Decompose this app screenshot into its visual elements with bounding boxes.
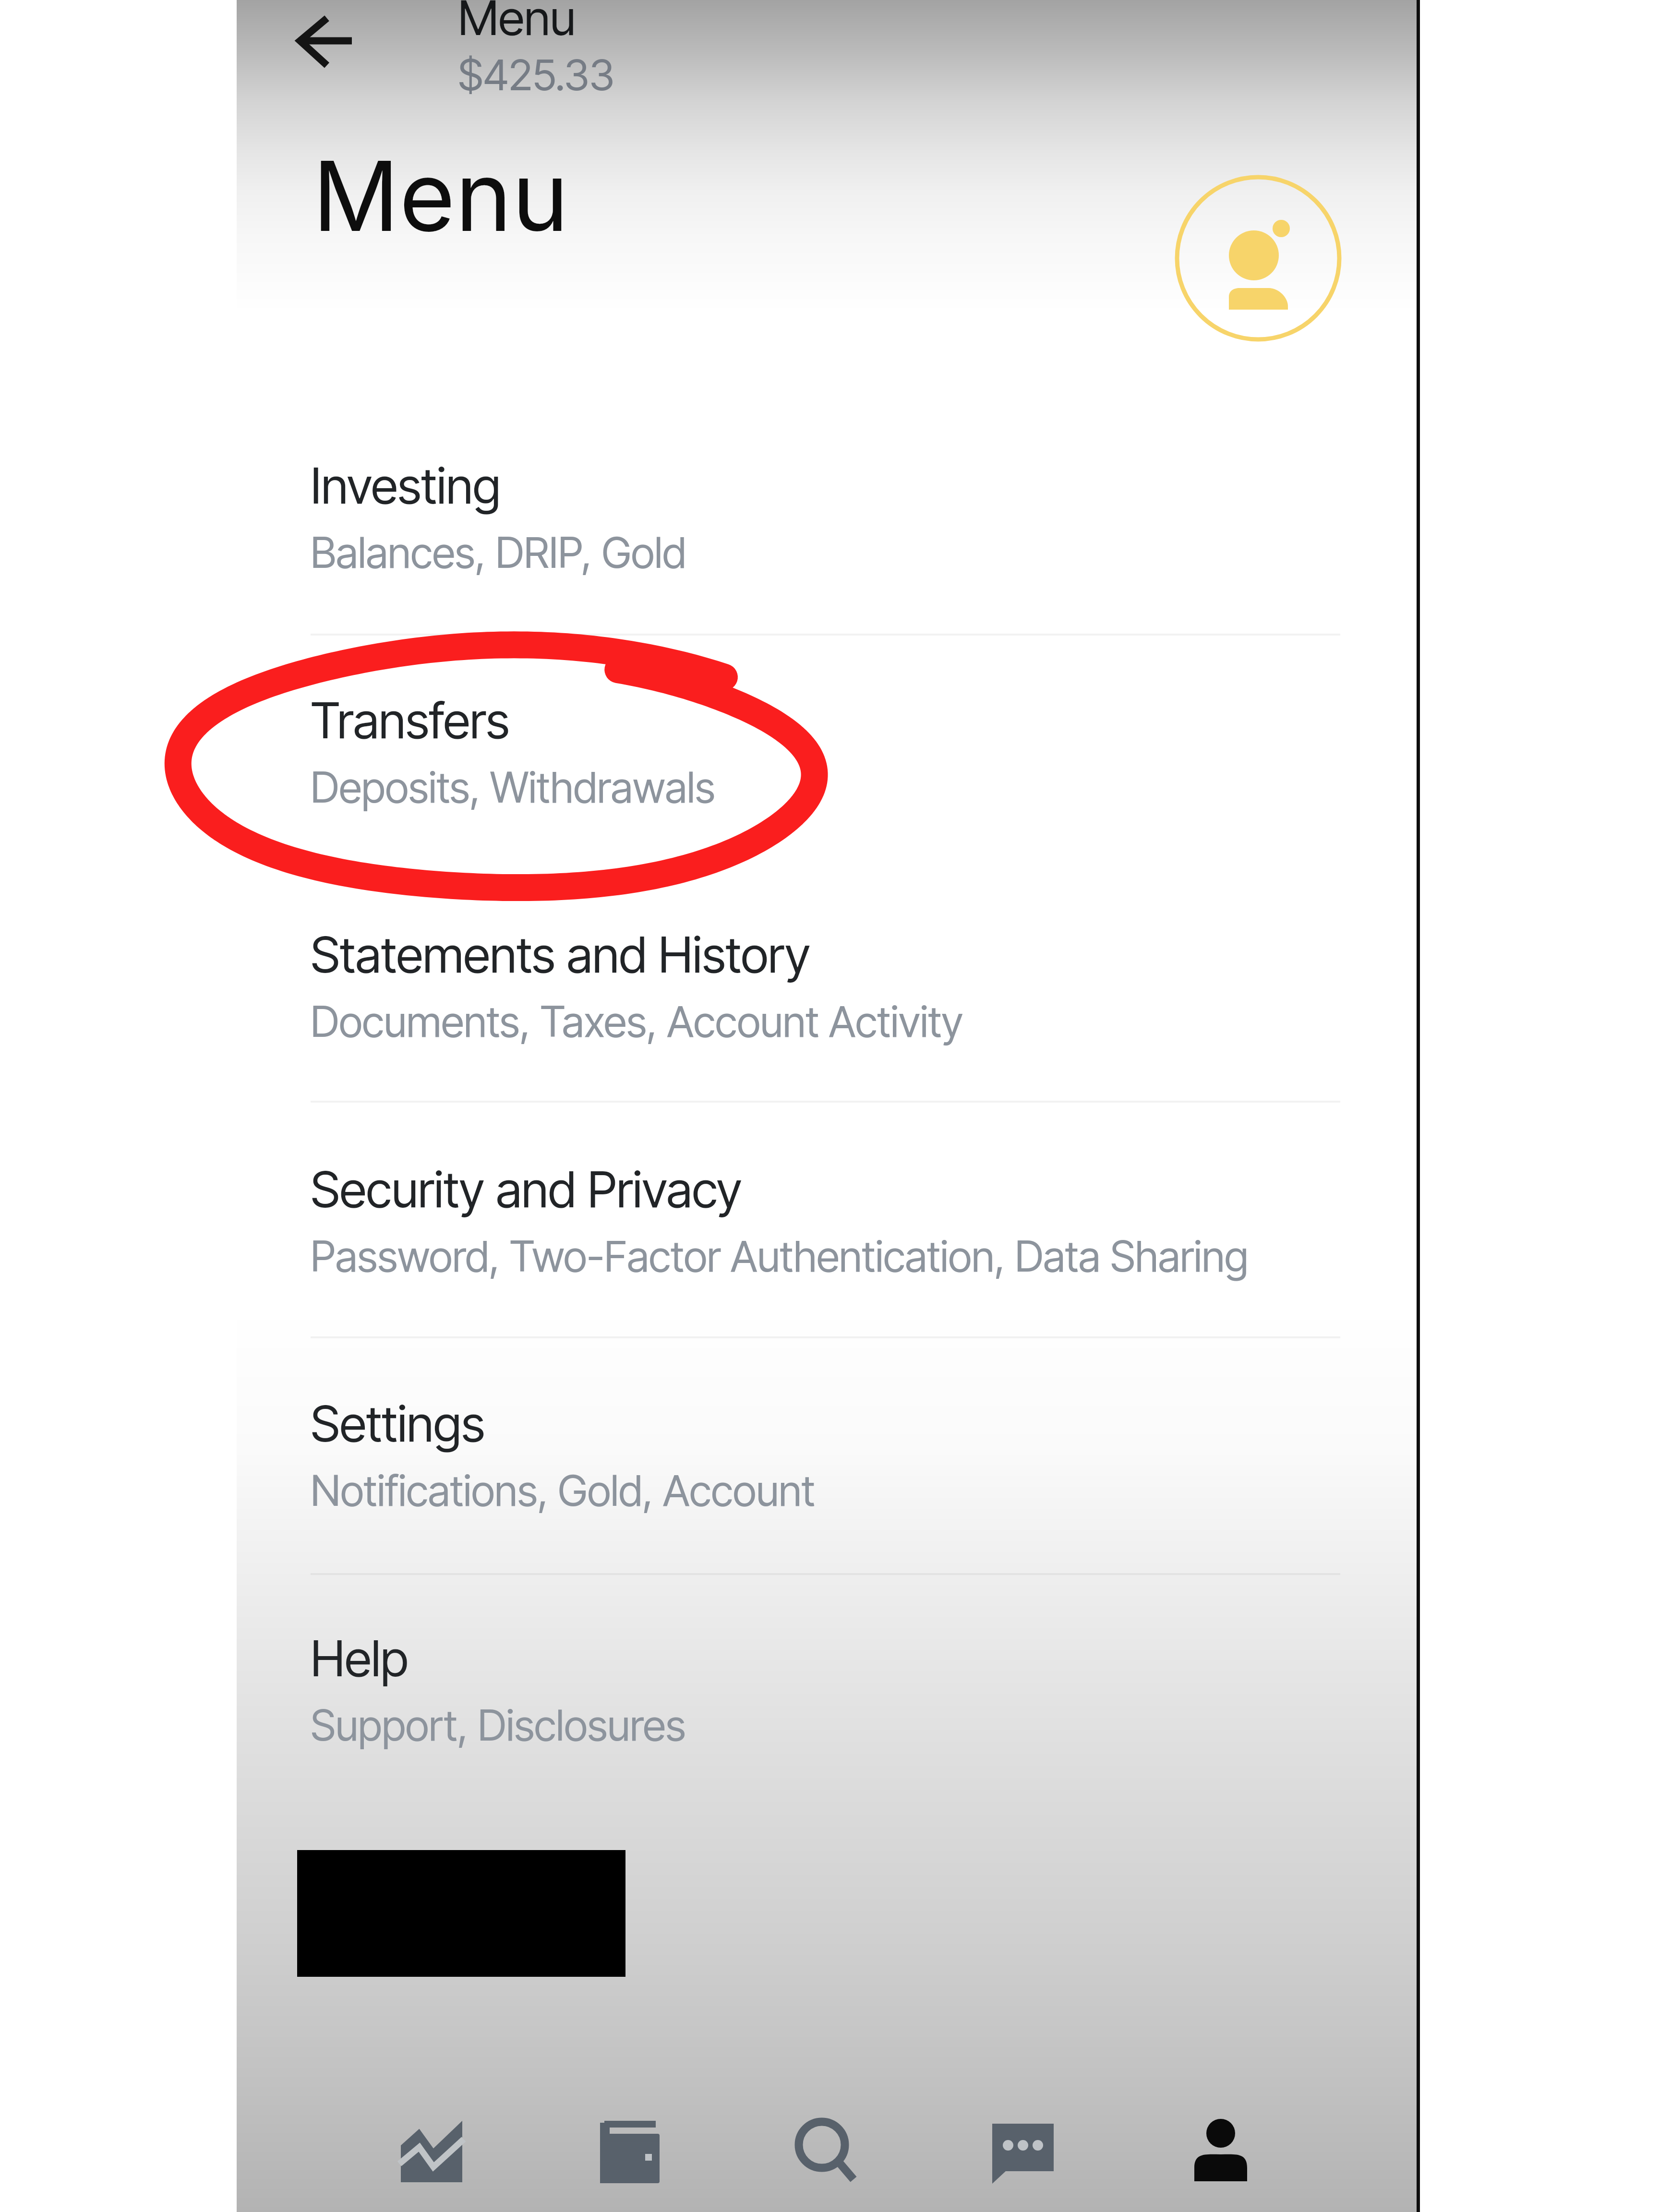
button[interactable]: Investing [360,2092,504,2212]
staticText: Deposits, Withdrawals [311,762,715,813]
staticText: Menu [313,138,569,254]
button[interactable]: Statements and History [237,853,1420,1035]
staticText: Support, Disclosures [311,1700,686,1751]
staticText: Transfers [311,690,510,750]
staticText: Statements and History [311,925,810,985]
button[interactable]: Menu [458,0,615,101]
button[interactable]: Search [750,2092,894,2212]
staticText: Balances, DRIP, Gold [311,527,686,578]
button[interactable]: Settings [237,1322,1420,1504]
button[interactable]: Transfers [237,618,1420,801]
staticText: Settings [311,1394,485,1454]
button[interactable]: Help [237,1556,1420,1739]
staticText: Investing [311,456,501,516]
staticText: Help [311,1628,409,1688]
button[interactable]: Wallet [558,2092,702,2212]
staticText: Documents, Taxes, Account Activity [311,996,963,1047]
button[interactable]: Notifications [951,2092,1095,2212]
staticText: Security and Privacy [311,1159,742,1219]
staticText: Menu [458,0,576,47]
staticText: Password, Two-Factor Authentication, Dat… [311,1231,1249,1282]
button[interactable]: Back [274,0,380,94]
button[interactable]: Profile [1175,175,1342,342]
button[interactable]: Account [1149,2092,1293,2212]
staticText: $425.33 [458,49,615,101]
button[interactable]: Investing [237,384,1420,566]
staticText: Notifications, Gold, Account [311,1465,815,1516]
button[interactable]: Security and Privacy [237,1087,1420,1270]
